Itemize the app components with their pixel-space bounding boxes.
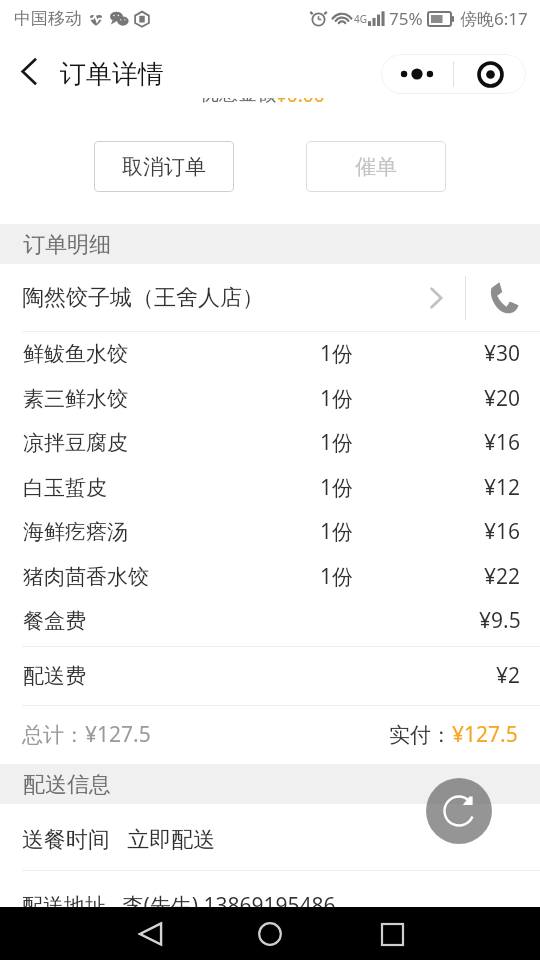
staticText: 白玉蜇皮 xyxy=(23,475,107,501)
staticText: ¥2 xyxy=(496,661,521,690)
button[interactable]: 催单 xyxy=(306,141,446,192)
staticText: 中国移动 xyxy=(14,8,82,29)
staticText: 鲜鲅鱼水饺 xyxy=(23,341,128,367)
staticText: 优惠金额 xyxy=(200,98,276,106)
staticText: 陶然饺子城（王舍人店） xyxy=(22,284,264,312)
staticText: 1份 xyxy=(320,562,354,591)
staticText: 凉拌豆腐皮 xyxy=(23,430,128,456)
staticText: ¥16 xyxy=(484,428,521,457)
button[interactable]: More xyxy=(381,54,453,94)
button[interactable]: Recents xyxy=(369,911,415,957)
staticText: 1份 xyxy=(320,428,354,457)
button[interactable]: Refresh xyxy=(426,778,492,844)
staticText: 4G xyxy=(354,12,367,26)
staticText: 1份 xyxy=(320,339,354,368)
staticText: 实付： xyxy=(389,722,452,748)
staticText: 催单 xyxy=(355,154,397,180)
staticText: 配送信息 xyxy=(23,771,111,799)
button[interactable]: Back xyxy=(128,911,174,957)
staticText: 海鲜疙瘩汤 xyxy=(23,519,128,545)
button[interactable]: Shop detail xyxy=(408,264,464,331)
staticText: 取消订单 xyxy=(122,154,206,180)
staticText: ¥22 xyxy=(484,562,521,591)
staticText: 餐盒费 xyxy=(23,608,86,634)
staticText: ¥0.00 xyxy=(276,98,325,108)
staticText: 订单详情 xyxy=(60,58,164,91)
staticText: 75% xyxy=(389,7,423,30)
staticText: 1份 xyxy=(320,384,354,413)
staticText: ¥20 xyxy=(484,384,521,413)
staticText: ¥30 xyxy=(484,339,521,368)
staticText: ¥9.5 xyxy=(479,606,521,635)
staticText: 猪肉茴香水饺 xyxy=(23,564,149,590)
staticText: ¥127.5 xyxy=(452,720,518,749)
staticText: ¥12 xyxy=(484,473,521,502)
staticText: 配送费 xyxy=(23,663,86,689)
button[interactable]: Home xyxy=(247,911,293,957)
staticText: 送餐时间 立即配送 xyxy=(22,823,216,853)
staticText: 配送地址 李(先生) 13869195486 xyxy=(22,891,336,907)
button[interactable]: 取消订单 xyxy=(94,141,234,192)
staticText: 1份 xyxy=(320,473,354,502)
button[interactable]: Call restaurant xyxy=(466,264,540,331)
button[interactable]: Close xyxy=(454,54,526,94)
staticText: 素三鲜水饺 xyxy=(23,386,128,412)
staticText: 傍晚6:17 xyxy=(460,7,528,30)
button[interactable]: Back xyxy=(6,48,52,94)
staticText: ¥16 xyxy=(484,517,521,546)
staticText: 订单明细 xyxy=(23,231,111,259)
staticText: 1份 xyxy=(320,517,354,546)
staticText: 总计：¥127.5 xyxy=(22,720,151,749)
